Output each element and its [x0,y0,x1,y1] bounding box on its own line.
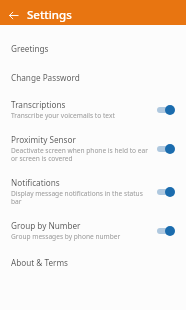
staticText: Greetings [11,43,49,54]
button[interactable]: Notifications [0,170,186,213]
staticText: Deactivate screen when phone is held to … [11,146,150,163]
button[interactable]: Toggle [156,103,178,117]
staticText: Settings [27,7,72,23]
button[interactable]: Back [4,6,22,24]
button[interactable]: Greetings [0,34,186,63]
button[interactable]: Change Password [0,63,186,92]
staticText: Transcribe your voicemails to text [11,111,115,120]
button[interactable]: Transcriptions [0,92,186,127]
button[interactable]: Toggle [156,142,178,156]
button[interactable]: Proximity Sensor [0,127,186,170]
staticText: About & Terms [11,257,69,268]
staticText: Group by Number [11,220,81,231]
button[interactable]: About & Terms [0,248,186,277]
staticText: Change Password [11,72,80,83]
button[interactable]: Toggle [156,224,178,238]
staticText: Group messages by phone number [11,232,121,241]
button[interactable]: Group by Number [0,213,186,248]
staticText: Transcriptions [11,99,66,110]
staticText: Proximity Sensor [11,134,76,145]
button[interactable]: Toggle [156,185,178,199]
staticText: Display message notifications in the sta… [11,189,150,206]
staticText: Notifications [11,177,60,188]
